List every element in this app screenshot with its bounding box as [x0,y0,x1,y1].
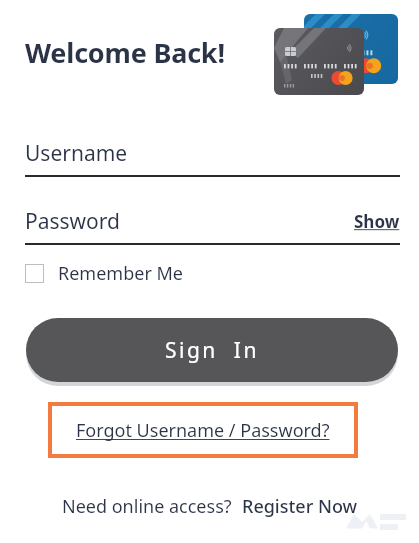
staticText: Sign In [165,336,259,365]
button[interactable]: Remember Me [25,258,183,288]
staticText: Welcome Back! [25,34,225,71]
button[interactable]: Forgot Username / Password? [48,402,358,458]
button[interactable]: Show [354,210,400,233]
staticText: Forgot Username / Password? [76,418,330,443]
staticText: Need online access? [62,494,232,519]
staticText: Show [354,210,400,233]
staticText: Register Now [242,494,358,519]
staticText: Remember Me [58,261,183,286]
other: Credit cards [268,8,408,100]
button[interactable]: Username [25,130,400,176]
staticText: Password [25,207,120,236]
button[interactable]: Register Now [242,494,358,519]
button[interactable]: Sign In [26,318,398,382]
button[interactable]: Password [25,198,275,244]
staticText: Username [25,139,128,168]
